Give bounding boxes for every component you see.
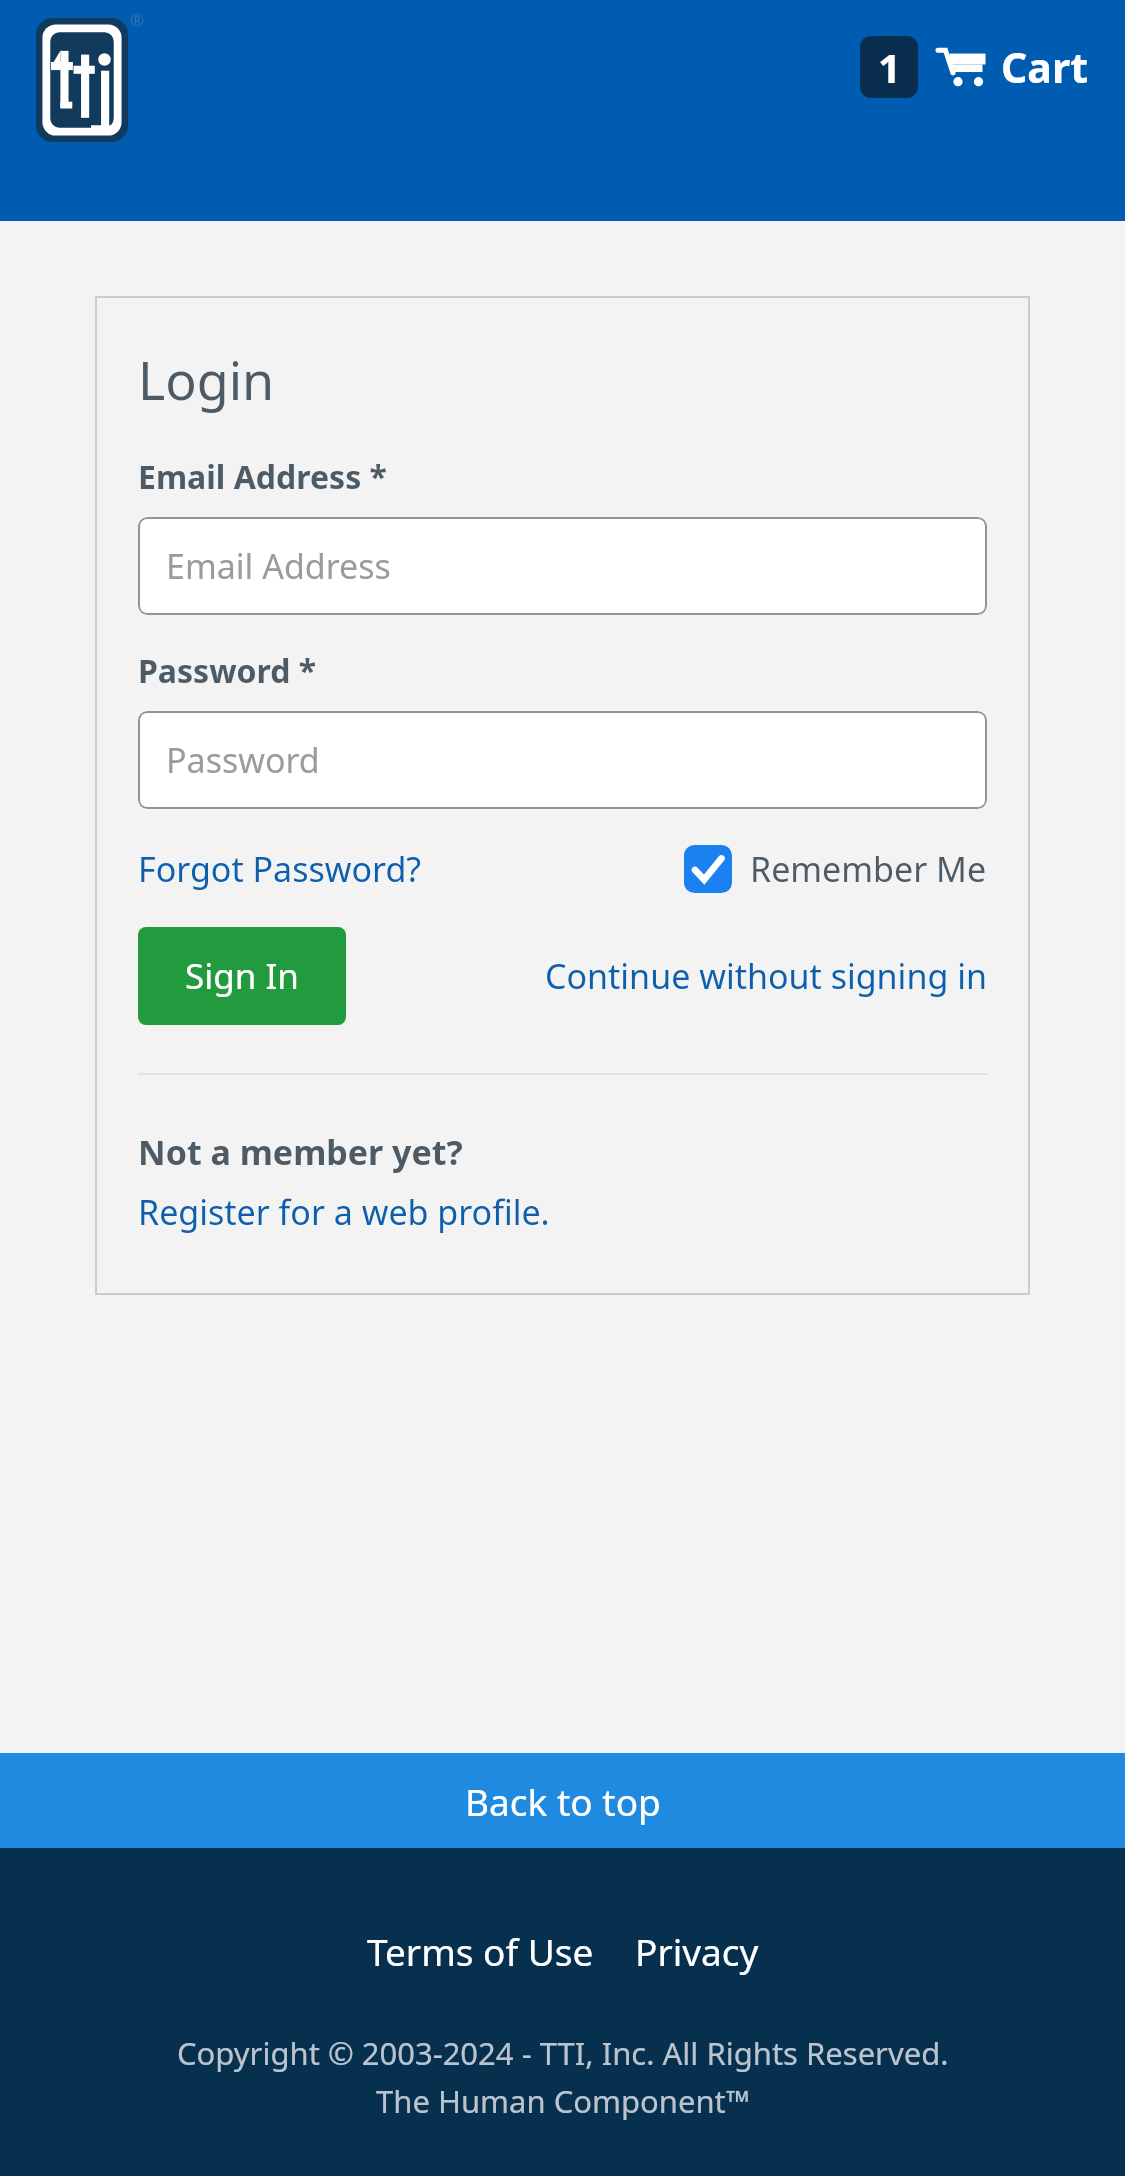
- button[interactable]: Email Address: [138, 517, 987, 615]
- staticText: 1: [878, 40, 901, 94]
- staticText: Cart: [1001, 39, 1089, 95]
- button[interactable]: Remember Me: [684, 845, 987, 893]
- button[interactable]: Terms of Use: [367, 1926, 594, 1976]
- staticText: Terms of Use: [367, 1926, 594, 1976]
- staticText: Email Address: [166, 543, 391, 589]
- button[interactable]: Back to top: [0, 1753, 1125, 1848]
- button[interactable]: Continue without signing in: [545, 953, 987, 999]
- staticText: Email Address *: [138, 455, 387, 499]
- staticText: Password *: [138, 649, 317, 693]
- staticText: ®: [130, 8, 145, 31]
- staticText: Forgot Password?: [138, 846, 422, 892]
- button[interactable]: Register for a web profile.: [138, 1189, 550, 1235]
- staticText: Continue without signing in: [545, 953, 987, 999]
- staticText: Privacy: [635, 1926, 759, 1976]
- staticText: Login: [138, 344, 275, 415]
- staticText: Register for a web profile.: [138, 1189, 550, 1235]
- button[interactable]: Password: [138, 711, 987, 809]
- staticText: Sign In: [185, 952, 299, 1000]
- staticText: The Human Component™: [376, 2080, 750, 2122]
- staticText: Password: [166, 737, 320, 783]
- button[interactable]: Sign In: [138, 927, 346, 1025]
- staticText: Not a member yet?: [138, 1129, 463, 1175]
- button[interactable]: Forgot Password?: [138, 846, 422, 892]
- staticText: Back to top: [465, 1776, 661, 1826]
- button[interactable]: Shopping cart, 1 item: [860, 36, 1089, 98]
- button[interactable]: TTI home: [36, 18, 128, 142]
- staticText: Remember Me: [750, 846, 987, 892]
- button[interactable]: Privacy: [635, 1926, 759, 1976]
- staticText: Copyright © 2003-2024 - TTI, Inc. All Ri…: [177, 2032, 949, 2074]
